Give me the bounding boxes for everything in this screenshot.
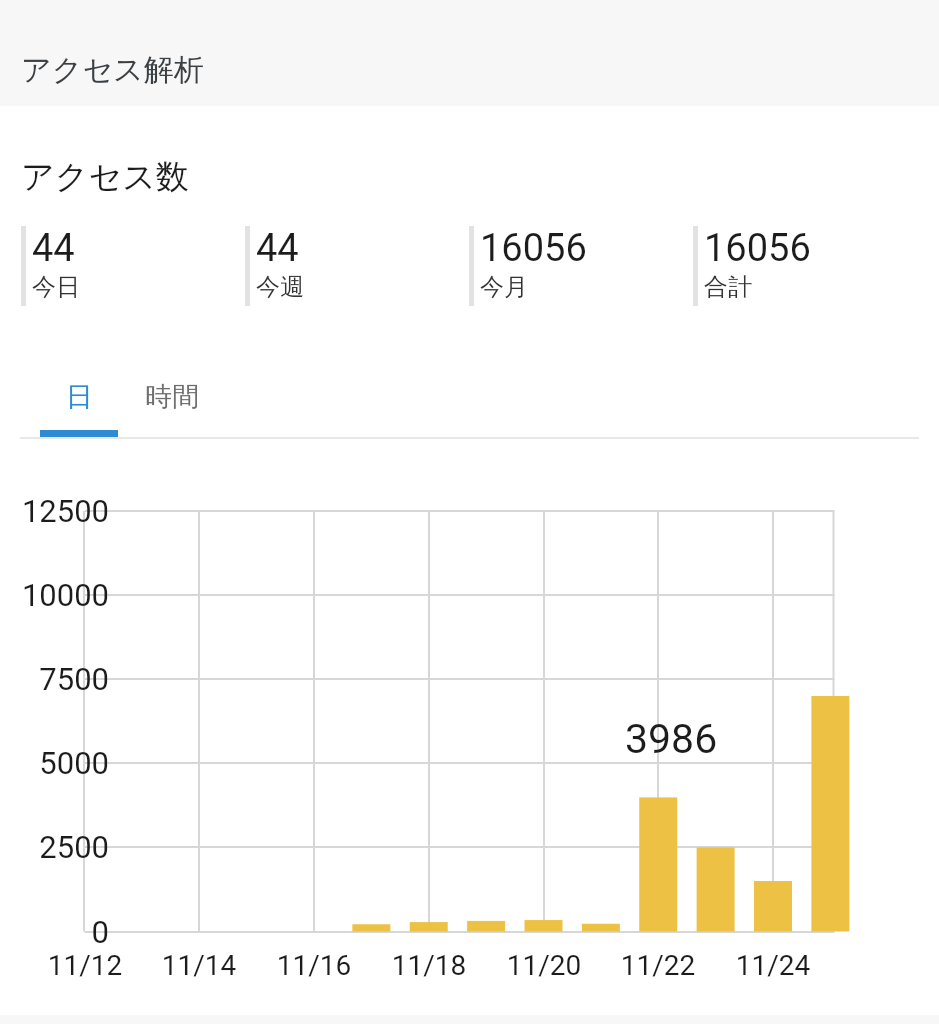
- staticText: 11/12: [25, 949, 145, 982]
- staticText: 日: [66, 380, 93, 414]
- staticText: 7500: [0, 661, 109, 697]
- other: Daily access bar chart: [0, 0, 939, 1024]
- staticText: 11/14: [139, 949, 259, 982]
- staticText: 44: [32, 226, 75, 271]
- staticText: 11/20: [484, 949, 604, 982]
- button[interactable]: 16056: [693, 226, 917, 306]
- staticText: 3986: [625, 715, 718, 763]
- staticText: 今日: [32, 272, 80, 302]
- staticText: 11/22: [598, 949, 718, 982]
- staticText: 今月: [480, 272, 528, 302]
- button[interactable]: 44: [21, 226, 245, 306]
- staticText: 今週: [256, 272, 304, 302]
- staticText: 12500: [0, 493, 109, 529]
- staticText: 10000: [0, 577, 109, 613]
- staticText: 5000: [0, 745, 109, 781]
- staticText: 11/24: [713, 949, 833, 982]
- staticText: 44: [256, 226, 299, 271]
- button[interactable]: 16056: [469, 226, 693, 306]
- staticText: 2500: [0, 829, 109, 865]
- button[interactable]: 日: [40, 360, 118, 437]
- staticText: 11/16: [254, 949, 374, 982]
- button[interactable]: 時間: [125, 360, 219, 437]
- staticText: 合計: [704, 272, 752, 302]
- staticText: 16056: [480, 226, 587, 271]
- staticText: 11/18: [369, 949, 489, 982]
- staticText: アクセス数: [21, 156, 190, 198]
- staticText: アクセス解析: [21, 51, 204, 89]
- staticText: 16056: [704, 226, 811, 271]
- staticText: 0: [0, 914, 109, 950]
- button[interactable]: 44: [245, 226, 469, 306]
- staticText: 時間: [145, 380, 199, 414]
